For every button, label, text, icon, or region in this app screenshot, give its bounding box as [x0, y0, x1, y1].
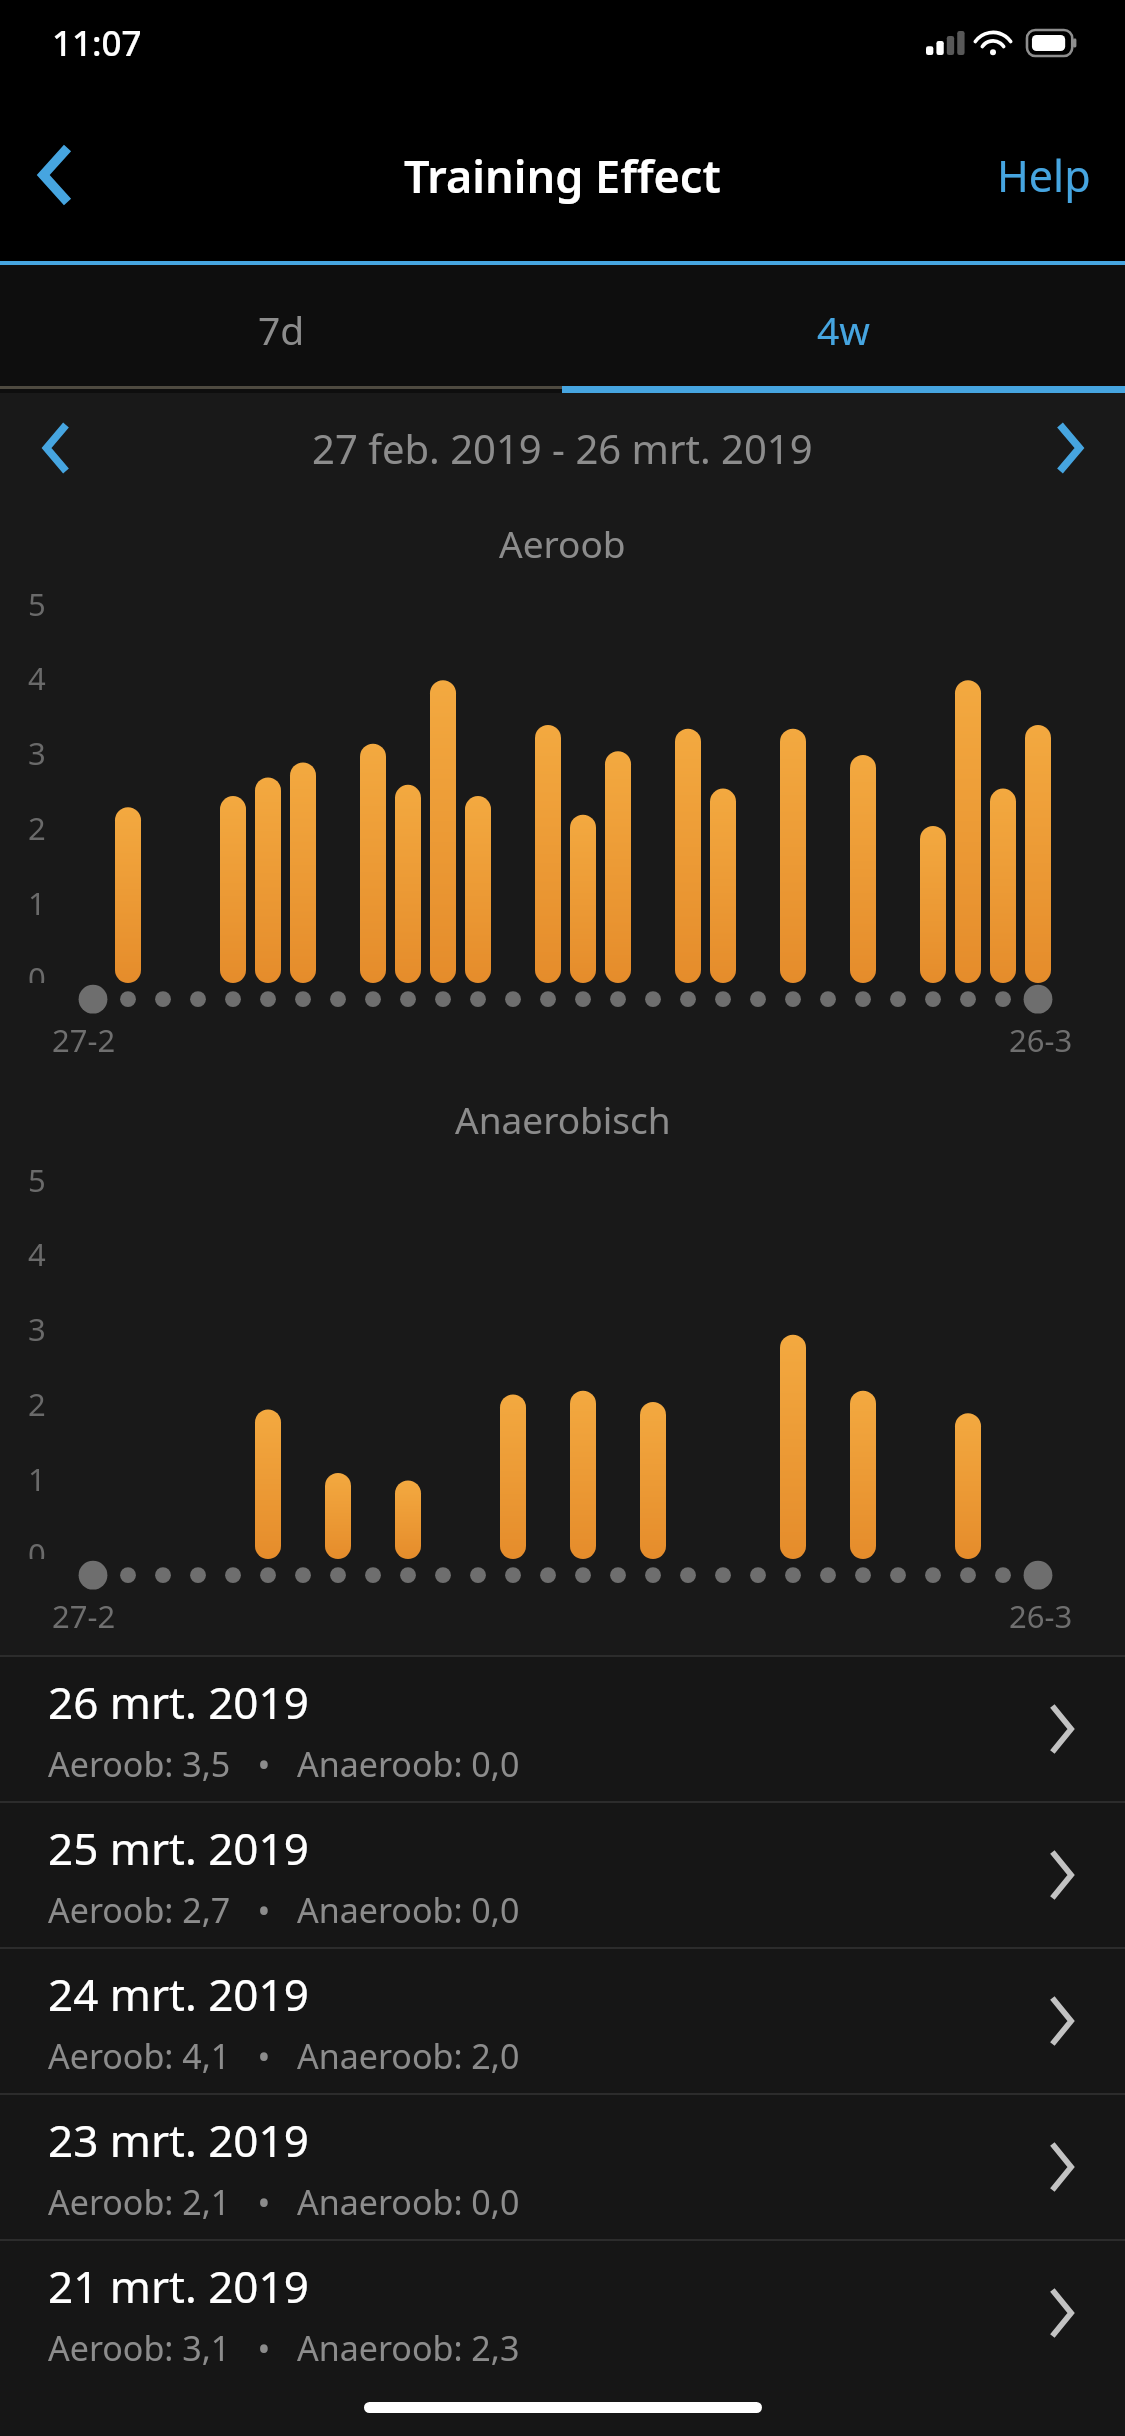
staticText: 5 [28, 583, 46, 625]
staticText: • [231, 2179, 297, 2225]
staticText: 27-2 [52, 1019, 116, 1061]
staticText: 4w [817, 303, 870, 356]
staticText: Anaeroob: 2,3 [297, 2325, 520, 2371]
staticText: • [231, 2325, 297, 2371]
staticText: 21 mrt. 2019 [48, 2256, 309, 2316]
button[interactable]: 24 mrt. 2019 [0, 1947, 1125, 2093]
staticText: Training Effect [404, 145, 721, 206]
staticText: 3 [28, 1308, 46, 1350]
staticText: 23 mrt. 2019 [48, 2110, 309, 2170]
staticText: Aeroob: 4,1 [48, 2033, 231, 2079]
staticText: 26-3 [1009, 1019, 1073, 1061]
staticText: Aeroob: 3,1 [48, 2325, 231, 2371]
staticText: 4 [28, 1233, 46, 1275]
staticText: 1 [28, 1458, 46, 1500]
staticText: Help [997, 146, 1091, 205]
button[interactable]: 25 mrt. 2019 [0, 1801, 1125, 1947]
staticText: • [231, 1741, 297, 1787]
staticText: 24 mrt. 2019 [48, 1964, 309, 2024]
staticText: 25 mrt. 2019 [48, 1818, 309, 1878]
button[interactable]: 7d [0, 265, 562, 393]
button[interactable]: Help [963, 85, 1125, 265]
staticText: • [231, 2033, 297, 2079]
staticText: 27-2 [52, 1595, 116, 1637]
staticText: 2 [28, 807, 46, 849]
staticText: 7d [258, 303, 305, 356]
staticText: 27 feb. 2019 - 26 mrt. 2019 [312, 421, 813, 475]
button[interactable]: Back [0, 85, 112, 265]
staticText: 3 [28, 732, 46, 774]
staticText: 0 [28, 1533, 46, 1559]
staticText: 4 [28, 657, 46, 699]
button[interactable]: 23 mrt. 2019 [0, 2093, 1125, 2239]
staticText: Aeroob [499, 518, 626, 568]
staticText: • [231, 1887, 297, 1933]
staticText: 11:07 [52, 19, 142, 67]
staticText: 26 mrt. 2019 [48, 1672, 309, 1732]
staticText: 2 [28, 1383, 46, 1425]
staticText: Aeroob: 2,7 [48, 1887, 231, 1933]
staticText: 5 [28, 1159, 46, 1201]
staticText: 26-3 [1009, 1595, 1073, 1637]
staticText: 0 [28, 957, 46, 983]
staticText: Anaeroob: 0,0 [297, 1887, 520, 1933]
button[interactable]: 26 mrt. 2019 [0, 1655, 1125, 1801]
staticText: Aeroob: 2,1 [48, 2179, 231, 2225]
button[interactable]: 4w [562, 265, 1125, 393]
staticText: Anaeroob: 2,0 [297, 2033, 520, 2079]
staticText: Aeroob: 3,5 [48, 1741, 231, 1787]
button[interactable]: Previous period [0, 393, 112, 503]
button[interactable]: Next period [1013, 393, 1125, 503]
staticText: Anaeroob: 0,0 [297, 2179, 520, 2225]
staticText: 1 [28, 882, 46, 924]
staticText: Anaeroob: 0,0 [297, 1741, 520, 1787]
button[interactable]: 21 mrt. 2019 [0, 2239, 1125, 2385]
staticText: Anaerobisch [455, 1094, 671, 1144]
